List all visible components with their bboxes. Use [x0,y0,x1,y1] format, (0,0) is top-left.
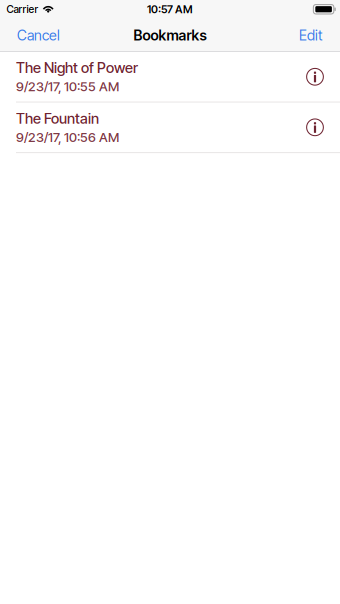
staticText: Cancel [17,27,60,44]
staticText: Bookmarks [133,27,206,44]
staticText: Edit [299,27,323,44]
button[interactable]: More info [293,55,337,99]
staticText: 10:57 AM [147,3,193,16]
staticText: 9/23/17, 10:55 AM [16,79,119,94]
button[interactable]: The Fountain [0,102,340,152]
staticText: The Night of Power [16,59,138,77]
staticText: Carrier [6,3,38,16]
button[interactable]: Edit [290,19,332,51]
button[interactable]: The Night of Power [0,52,340,101]
staticText: 9/23/17, 10:56 AM [16,129,119,145]
staticText: The Fountain [16,110,99,127]
button[interactable]: More info [293,105,337,149]
button[interactable]: Cancel [8,19,69,51]
